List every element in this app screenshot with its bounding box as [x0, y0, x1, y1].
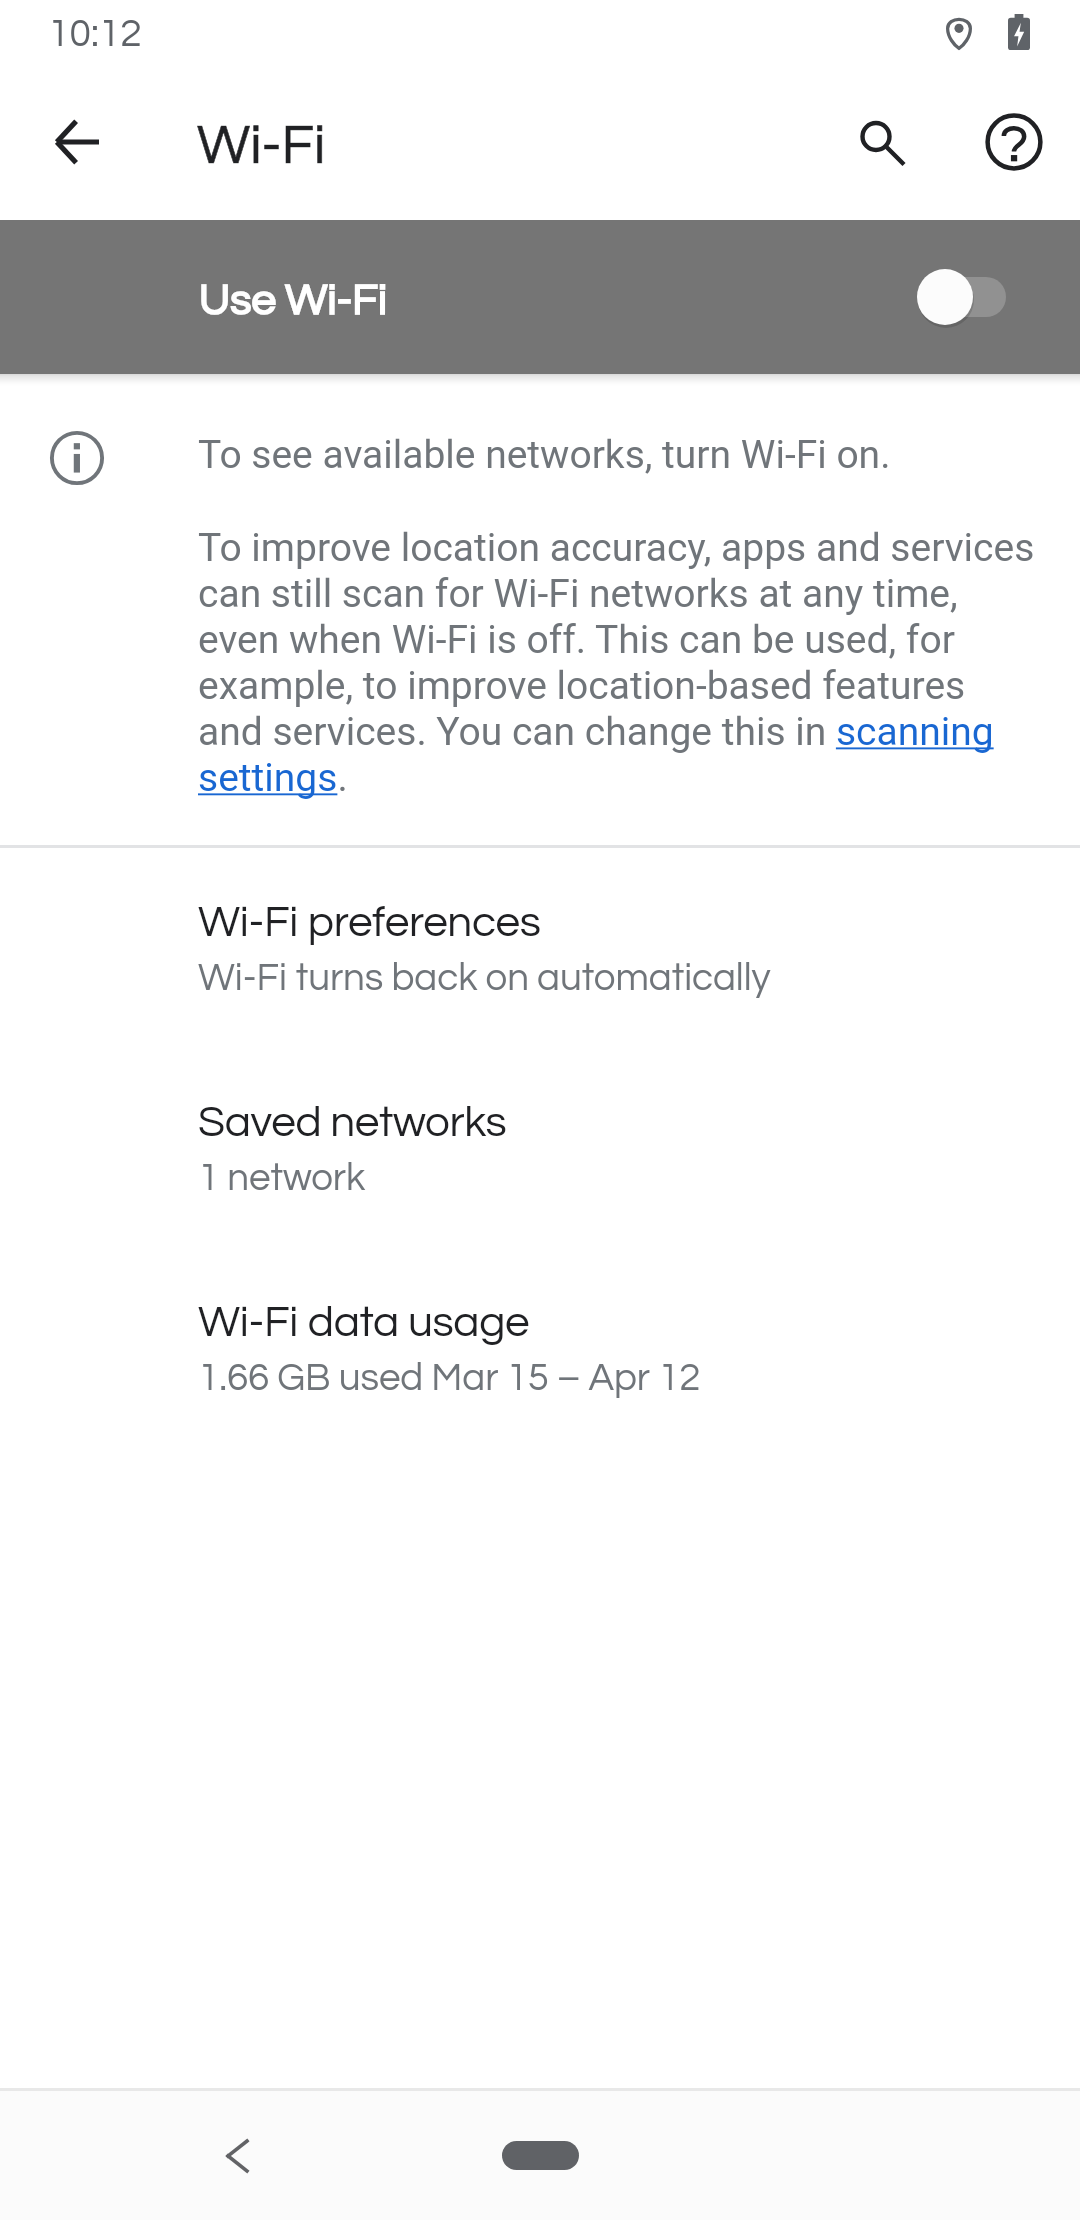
staticText: Wi-Fi	[197, 117, 326, 174]
button[interactable]: Search	[833, 94, 929, 190]
staticText: 10:12	[48, 14, 142, 54]
button[interactable]: Navigate up	[29, 94, 125, 190]
staticText: Wi-Fi	[197, 117, 326, 174]
staticText: 1 network	[198, 1158, 366, 1198]
staticText: Wi-Fi preferences	[198, 900, 541, 945]
button[interactable]: Help	[966, 94, 1062, 190]
button[interactable]: Wi-Fi data usage	[0, 1274, 1080, 1438]
button[interactable]: Home	[502, 2141, 579, 2170]
staticText: To see available networks, turn Wi-Fi on…	[198, 432, 891, 478]
staticText: Saved networks	[198, 1100, 507, 1145]
button[interactable]: Saved networks	[0, 1074, 1080, 1238]
button[interactable]: Back	[193, 2111, 283, 2201]
staticText: 1.66 GB used Mar 15 – Apr 12	[198, 1358, 701, 1398]
staticText: Wi-Fi data usage	[198, 1300, 530, 1345]
staticText: Wi-Fi turns back on automatically	[198, 958, 771, 998]
staticText: Use Wi-Fi	[199, 278, 387, 323]
staticText: Use Wi-Fi	[199, 278, 387, 323]
staticText: To improve location accuracy, apps and s…	[198, 525, 1036, 801]
button[interactable]: Use Wi-Fi	[0, 220, 1080, 374]
button[interactable]: Wi-Fi preferences	[0, 874, 1080, 1038]
